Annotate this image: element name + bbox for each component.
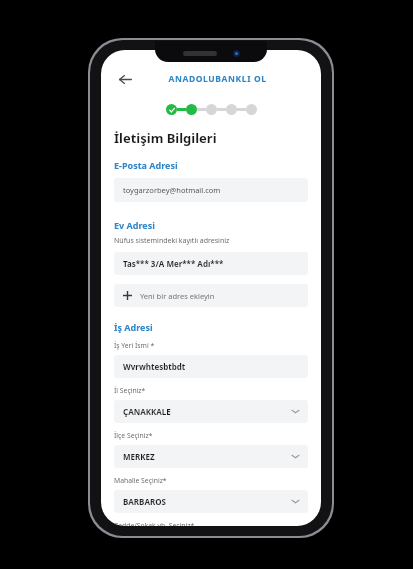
staticText: Tas*** 3/A Mer*** Adı*** [123,258,224,269]
staticText: İletişim Bilgileri [114,129,217,147]
staticText: BARBAROS [123,496,166,507]
staticText: Ev Adresi [114,219,155,231]
staticText: Yeni bir adres ekleyin [140,291,215,301]
staticText: Wvrwhtesbtbdt [123,361,186,372]
button[interactable]: toygarzorbey@hotmail.com [114,178,308,202]
staticText: İş Adresi [114,321,153,333]
button[interactable]: Wvrwhtesbtbdt [114,355,308,378]
staticText: E-Posta Adresi [114,159,178,171]
staticText: Cadde/Sokak vb. Seçiniz* [114,521,195,526]
button[interactable]: MERKEZ [114,445,308,468]
staticText: İlçe Seçiniz* [114,431,153,440]
staticText: Mahalle Seçiniz* [114,476,167,485]
staticText: ANADOLUBANKLI OL [168,73,267,85]
button[interactable]: Back [115,69,135,89]
staticText: İl Seçiniz* [114,386,146,395]
button[interactable]: ÇANAKKALE [114,400,308,423]
staticText: MERKEZ [123,451,155,462]
button[interactable]: Tas*** 3/A Mer*** Adı*** [114,252,308,275]
staticText: toygarzorbey@hotmail.com [123,185,221,195]
button[interactable]: Yeni bir adres ekleyin [114,284,308,307]
button[interactable]: BARBAROS [114,490,308,513]
staticText: Nüfus sistemindeki kayıtlı adresiniz [114,236,230,246]
staticText: İş Yeri İsmi * [114,341,155,350]
staticText: ÇANAKKALE [123,406,171,417]
